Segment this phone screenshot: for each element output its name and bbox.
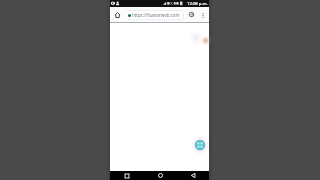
button[interactable]: Home: [113, 10, 122, 19]
button[interactable]: Tabs: [187, 10, 196, 19]
button[interactable]: More options: [199, 11, 207, 19]
staticText: https://fuanarweb.com: [132, 12, 180, 18]
button[interactable]: https://fuanarweb.com: [123, 10, 187, 20]
staticText: ⋮: [181, 13, 186, 18]
button[interactable]: Recents: [122, 171, 132, 180]
button[interactable]: Open chat: [194, 139, 206, 151]
staticText: 12:08 p.m.: [187, 1, 208, 7]
button[interactable]: Home: [155, 171, 165, 180]
button[interactable]: Back: [188, 171, 198, 180]
